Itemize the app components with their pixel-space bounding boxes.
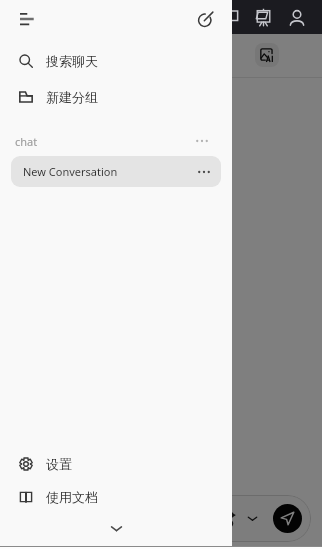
button[interactable]: Send xyxy=(273,504,302,533)
staticText: New Conversation xyxy=(23,164,118,179)
button[interactable]: 设置 xyxy=(11,448,221,480)
staticText: 设置 xyxy=(46,456,72,472)
button[interactable]: AI image xyxy=(255,43,279,67)
staticText: 使用文档 xyxy=(46,489,98,505)
staticText: 搜索聊天 xyxy=(46,53,98,69)
button[interactable]: Group options xyxy=(191,130,213,152)
button[interactable]: Profile xyxy=(281,2,312,33)
button[interactable]: Collapse xyxy=(0,514,232,542)
button[interactable]: New chat xyxy=(189,3,221,35)
button[interactable]: 新建分组 xyxy=(11,81,221,113)
button[interactable]: Chat xyxy=(215,2,246,33)
button[interactable]: Menu xyxy=(11,3,43,35)
staticText: chat xyxy=(15,134,38,149)
button[interactable]: Presentation xyxy=(248,2,279,33)
staticText: 新建分组 xyxy=(46,89,98,105)
button[interactable]: 搜索聊天 xyxy=(11,45,221,77)
button[interactable]: 使用文档 xyxy=(11,481,221,513)
button[interactable]: New Conversation xyxy=(11,156,221,187)
